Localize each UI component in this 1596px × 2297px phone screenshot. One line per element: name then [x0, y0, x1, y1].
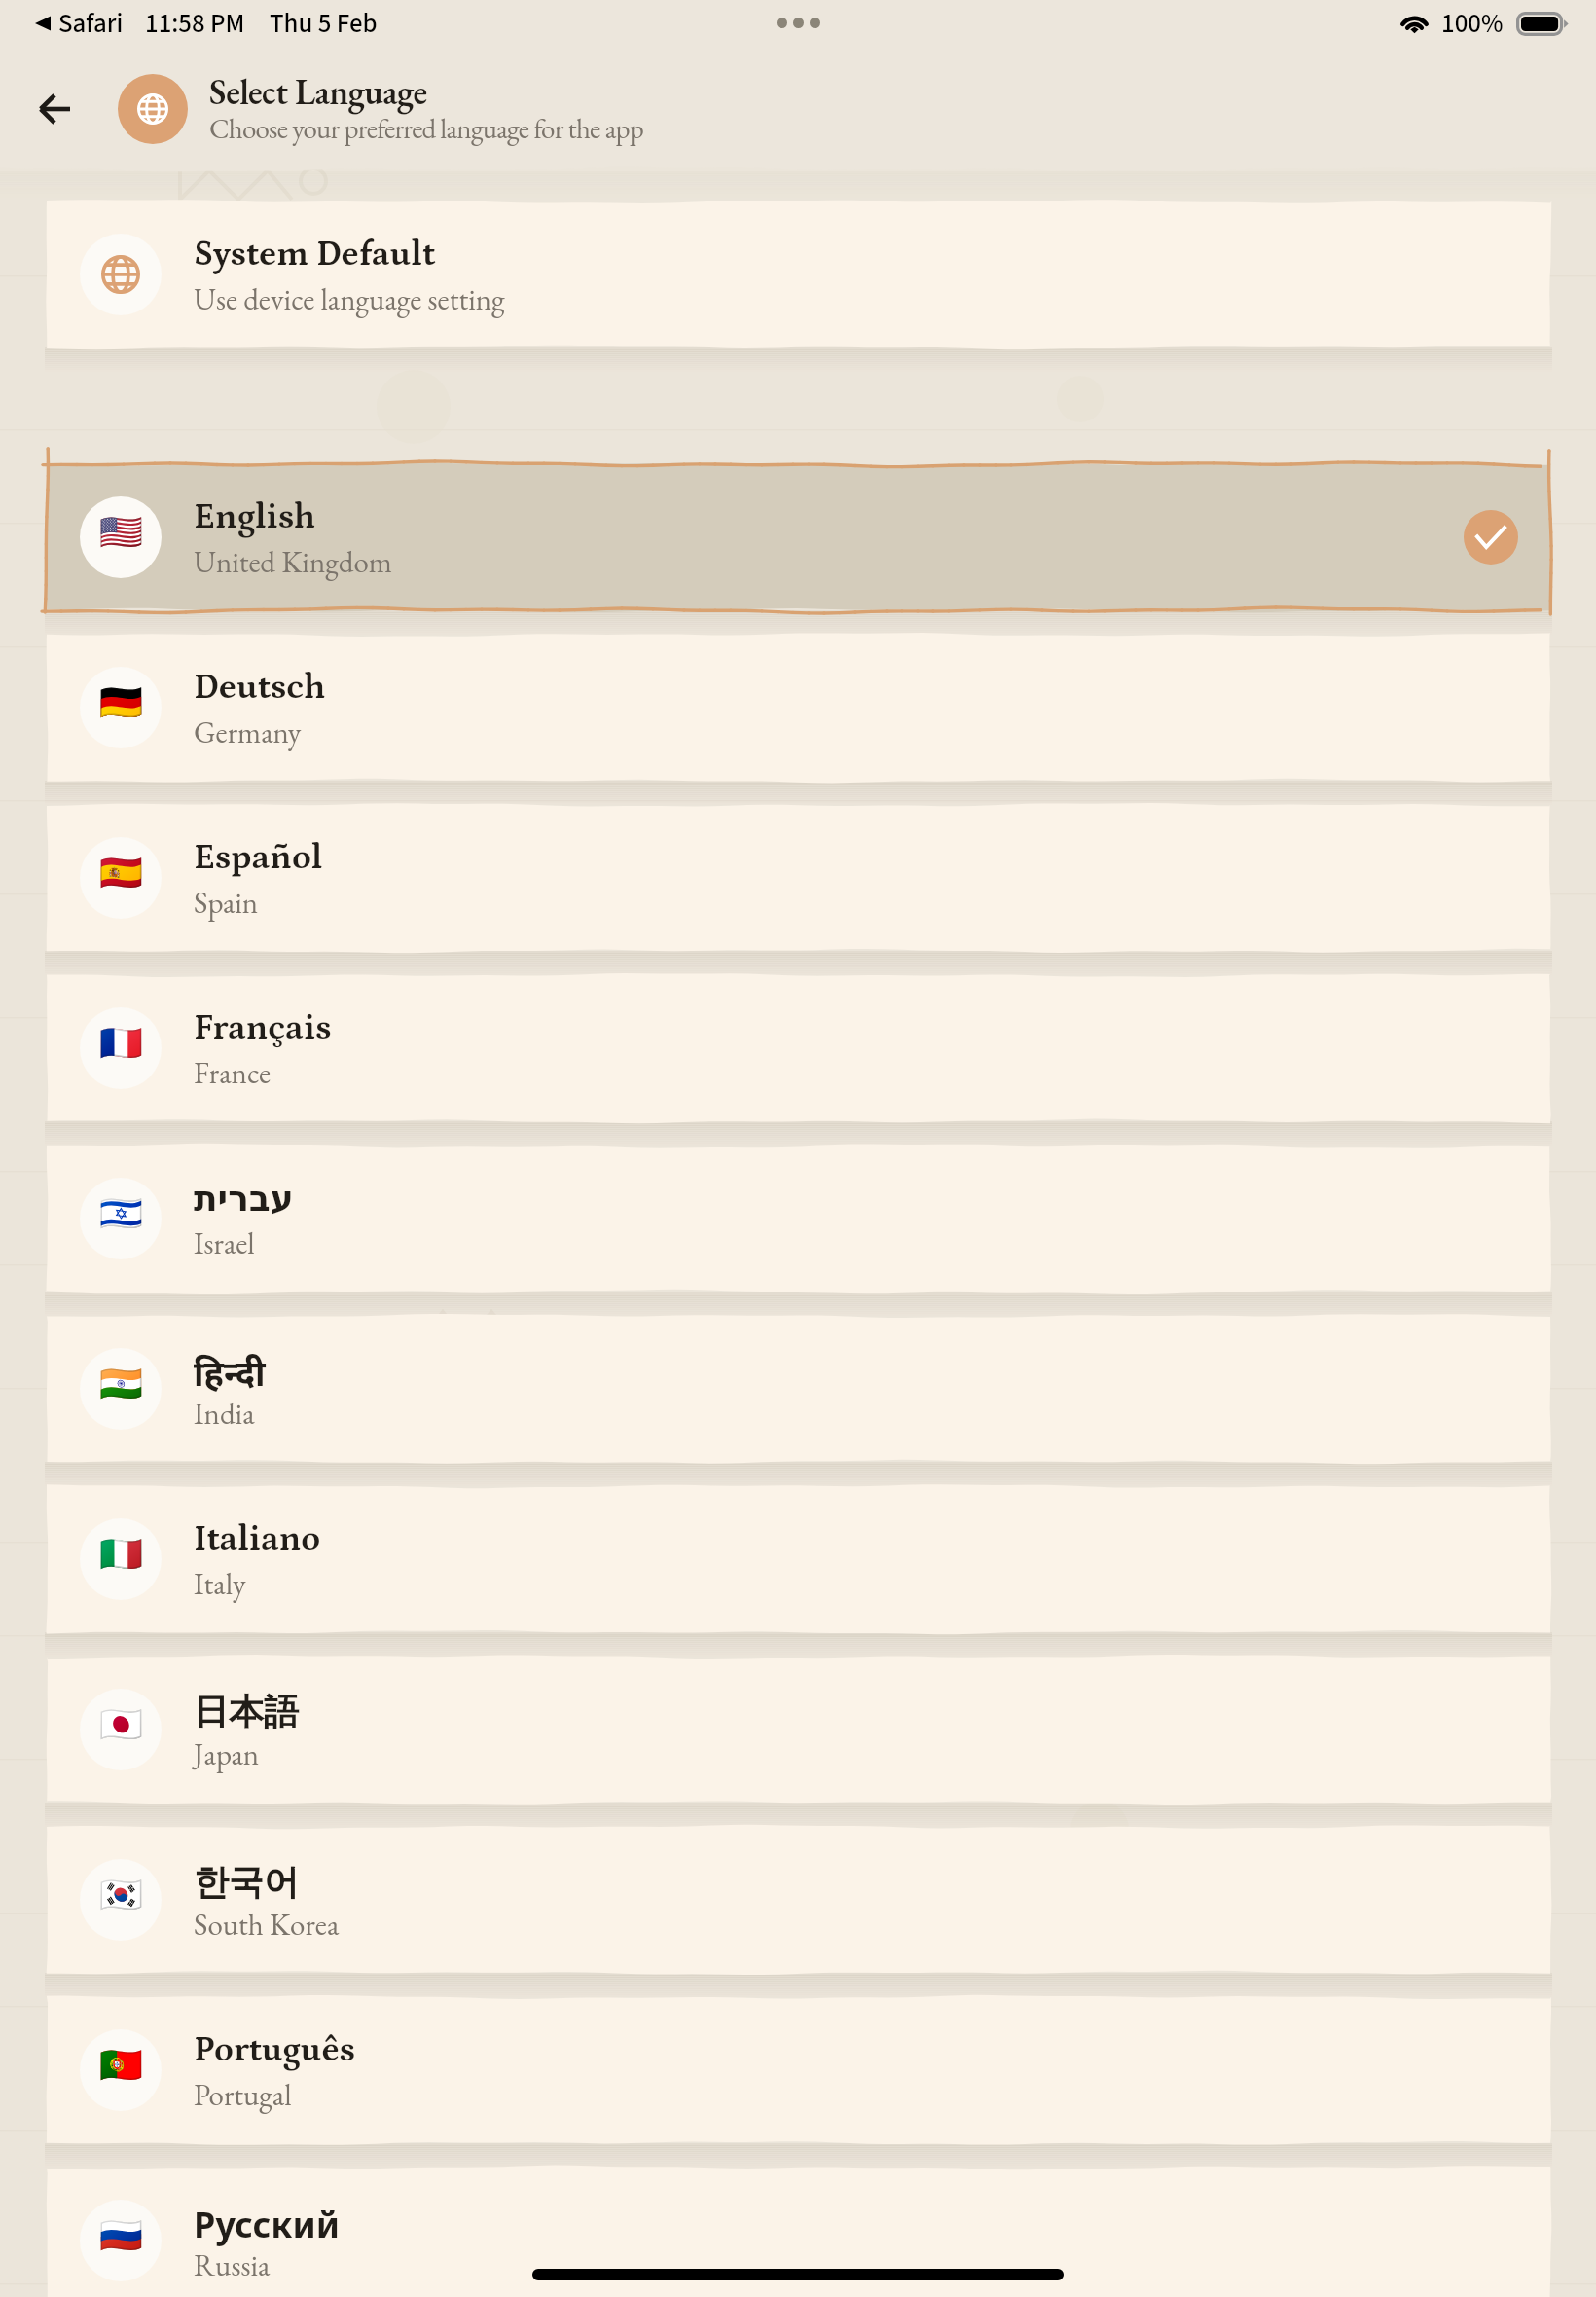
button[interactable]: 🇮🇱: [47, 1146, 1550, 1292]
staticText: 11:58 PM: [145, 5, 245, 42]
staticText: 日本語: [194, 1690, 299, 1733]
staticText: South Korea: [194, 1905, 340, 1944]
staticText: Spain: [194, 883, 259, 922]
staticText: Russia: [194, 2245, 271, 2284]
button[interactable]: 🇯🇵: [47, 1657, 1550, 1803]
staticText: 🇮🇹: [99, 1534, 143, 1575]
staticText: English: [194, 497, 316, 537]
button[interactable]: 🇪🇸: [47, 805, 1550, 951]
button[interactable]: 🇵🇹: [47, 1997, 1550, 2143]
button[interactable]: 🇷🇺: [47, 2168, 1550, 2297]
staticText: United Kingdom: [194, 542, 392, 581]
button[interactable]: 🇫🇷: [47, 975, 1550, 1121]
staticText: India: [194, 1394, 255, 1433]
staticText: 🇮🇱: [99, 1193, 143, 1234]
staticText: Italy: [194, 1564, 246, 1603]
button[interactable]: 🇰🇷: [47, 1827, 1550, 1973]
staticText: 한국어: [194, 1860, 299, 1904]
staticText: Español: [194, 838, 323, 878]
staticText: עברית: [194, 1179, 294, 1220]
staticText: Portugal: [194, 2075, 292, 2114]
staticText: Русский: [194, 2201, 340, 2248]
staticText: Français: [194, 1008, 332, 1048]
staticText: 🇺🇸: [99, 512, 143, 553]
button[interactable]: Back: [16, 66, 93, 152]
button[interactable]: 🇮🇳: [47, 1316, 1550, 1462]
staticText: 🇮🇳: [99, 1364, 143, 1404]
staticText: Safari: [58, 5, 124, 42]
staticText: 🇷🇺: [99, 2215, 143, 2256]
staticText: Israel: [194, 1223, 255, 1262]
staticText: Use device language setting: [194, 279, 505, 318]
staticText: Deutsch: [194, 668, 326, 708]
staticText: France: [194, 1053, 272, 1092]
staticText: System Default: [194, 235, 435, 274]
button[interactable]: System Default: [47, 201, 1550, 347]
staticText: 🇩🇪: [99, 682, 143, 723]
staticText: 🇯🇵: [99, 1704, 143, 1745]
button[interactable]: 🇮🇹: [47, 1486, 1550, 1632]
button[interactable]: 🇩🇪: [47, 635, 1550, 781]
staticText: Choose your preferred language for the a…: [209, 110, 643, 147]
staticText: हिन्दी: [194, 1349, 266, 1397]
staticText: 100%: [1441, 5, 1504, 42]
button[interactable]: 🇺🇸: [47, 464, 1550, 610]
staticText: 🇫🇷: [99, 1023, 143, 1064]
staticText: Germany: [194, 712, 302, 751]
staticText: 🇰🇷: [99, 1875, 143, 1915]
staticText: Thu 5 Feb: [270, 5, 378, 42]
staticText: Select Language: [209, 69, 427, 115]
staticText: Português: [194, 2030, 356, 2070]
staticText: 🇪🇸: [99, 853, 143, 893]
staticText: 🇵🇹: [99, 2045, 143, 2086]
staticText: Italiano: [194, 1519, 321, 1559]
staticText: Japan: [194, 1734, 260, 1773]
